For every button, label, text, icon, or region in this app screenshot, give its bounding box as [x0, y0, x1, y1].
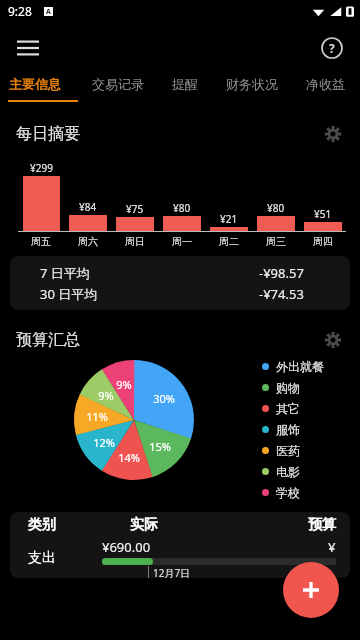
button[interactable]: 财务状况	[212, 74, 292, 92]
staticText: 9:28	[8, 3, 32, 19]
staticText: 30%	[152, 391, 176, 406]
staticText: ¥299	[30, 161, 53, 175]
staticText: 周六	[78, 235, 98, 248]
button[interactable]: Settings	[318, 325, 348, 355]
staticText: 周四	[313, 235, 333, 248]
button[interactable]: 学校	[262, 482, 300, 502]
button[interactable]: 电影	[262, 461, 300, 482]
staticText: 学校	[276, 485, 300, 500]
staticText: -¥74.53	[259, 285, 304, 303]
staticText: ¥51	[314, 207, 332, 221]
staticText: 30 日平均	[40, 285, 98, 303]
staticText: ¥690.00	[102, 538, 151, 556]
staticText: 12月7日	[153, 566, 191, 578]
staticText: ¥	[328, 538, 336, 556]
staticText: 周五	[31, 235, 51, 248]
staticText: 12%	[92, 435, 116, 450]
staticText: 周一	[172, 235, 192, 248]
button[interactable]: 其它	[262, 398, 300, 419]
button[interactable]: 净收益	[292, 74, 359, 92]
staticText: ¥80	[267, 201, 285, 215]
staticText: 9%	[112, 377, 136, 392]
staticText: 每日摘要	[16, 124, 80, 144]
button[interactable]: 医药	[262, 440, 300, 461]
staticText: ?	[329, 40, 335, 56]
staticText: 预算汇总	[16, 330, 80, 350]
staticText: 7 日平均	[40, 264, 90, 282]
staticText: 电影	[276, 464, 300, 479]
staticText: 9%	[94, 388, 118, 403]
button[interactable]: 提醒	[158, 74, 212, 92]
button[interactable]: 交易记录	[78, 74, 158, 92]
staticText: 实际	[130, 516, 158, 534]
staticText: 周二	[219, 235, 239, 248]
staticText: ¥75	[126, 202, 144, 216]
staticText: 外出就餐	[276, 359, 324, 374]
staticText: ¥80	[173, 201, 191, 215]
button[interactable]: 外出就餐	[262, 356, 324, 377]
staticText: 主要信息	[9, 76, 61, 92]
staticText: 15%	[148, 439, 172, 454]
staticText: 其它	[276, 401, 300, 416]
staticText: -¥98.57	[259, 264, 304, 282]
staticText: 财务状况	[226, 76, 278, 92]
button[interactable]: 30 日平均	[10, 283, 350, 304]
staticText: 周日	[125, 235, 145, 248]
staticText: 购物	[276, 380, 300, 395]
staticText: 医药	[276, 443, 300, 458]
staticText: 支出	[28, 549, 56, 567]
button[interactable]: 7 日平均	[10, 262, 350, 283]
staticText: ¥21	[220, 212, 238, 226]
button[interactable]: Help	[312, 28, 352, 68]
staticText: 交易记录	[92, 76, 144, 92]
button[interactable]: 主要信息	[0, 74, 78, 102]
staticText: 服饰	[276, 422, 300, 437]
staticText: A	[46, 7, 51, 16]
staticText: 提醒	[172, 76, 198, 92]
staticText: 类别	[28, 516, 56, 534]
button[interactable]: Add transaction	[283, 562, 339, 618]
button[interactable]: Settings	[318, 119, 348, 149]
button[interactable]: 购物	[262, 377, 300, 398]
staticText: 14%	[117, 450, 141, 465]
button[interactable]: Open navigation menu	[8, 28, 48, 68]
staticText: ¥84	[79, 200, 97, 214]
staticText: 预算	[308, 516, 336, 534]
staticText: 11%	[85, 409, 109, 424]
staticText: 周三	[266, 235, 286, 248]
staticText: 净收益	[306, 76, 345, 92]
button[interactable]: 服饰	[262, 419, 300, 440]
